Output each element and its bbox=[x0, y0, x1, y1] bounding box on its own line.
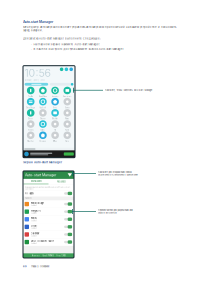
staticText: · bbox=[31, 47, 32, 51]
staticText: Enabled bbox=[30, 220, 36, 222]
staticText: Переключатели для разрешения или запрета… bbox=[97, 209, 132, 214]
staticText: Radio bbox=[65, 129, 69, 131]
staticText: PRELOADED bbox=[56, 180, 65, 183]
staticText: Quick Clean bbox=[39, 95, 47, 97]
button[interactable]: DOWNLOADED bbox=[23, 179, 48, 184]
button[interactable]: PhotoCollage bbox=[23, 200, 74, 208]
staticText: 10:56 bbox=[25, 66, 51, 79]
button[interactable]: Gmail bbox=[23, 223, 74, 231]
staticText: Enabled bbox=[30, 204, 36, 206]
staticText: Auto-start bbox=[63, 95, 72, 97]
staticText: Для запуска Auto-start Manager выполните… bbox=[23, 37, 101, 40]
staticText: File bbox=[54, 129, 56, 131]
button[interactable]: Photos bbox=[23, 215, 74, 223]
staticText: Cleaner bbox=[40, 118, 46, 120]
staticText: Нажмите, чтобы запустить Auto-start Mana… bbox=[104, 89, 152, 91]
staticText: Enabled bbox=[30, 235, 36, 237]
staticText: Mi Pay bbox=[53, 140, 57, 142]
staticText: Нажмите для отображения списка загруженн… bbox=[97, 171, 137, 176]
staticText: · bbox=[31, 43, 32, 46]
staticText: В панели быстрого доступа нажмите значок… bbox=[33, 47, 124, 51]
staticText: Calendar bbox=[30, 232, 39, 235]
staticText: MangaLife bbox=[30, 209, 40, 212]
staticText: Глава 3. Основное bbox=[31, 265, 49, 268]
button[interactable]: All apps bbox=[23, 190, 74, 196]
button[interactable]: Calendar bbox=[23, 231, 74, 238]
staticText: Enabled bbox=[30, 242, 36, 244]
staticText: ENABLED bbox=[25, 197, 32, 199]
staticText: Weather bbox=[27, 140, 34, 142]
staticText: Auto-start Manager bbox=[25, 173, 56, 177]
staticText: All apps bbox=[25, 192, 34, 195]
staticText: Blocklist bbox=[52, 118, 58, 120]
staticText: Boost bbox=[28, 118, 33, 120]
staticText: Gmail bbox=[30, 224, 37, 227]
staticText: DOWNLOADED bbox=[30, 180, 41, 182]
staticText: Data Usage bbox=[26, 107, 35, 108]
staticText: Sync bbox=[53, 107, 57, 108]
staticText: App Lock bbox=[39, 107, 46, 108]
staticText: Store bbox=[65, 140, 69, 142]
button[interactable]: MIUI Cloud PC Suite bbox=[23, 238, 74, 246]
staticText: Экран Auto-start Manager bbox=[23, 161, 62, 164]
button[interactable]: MangaLife bbox=[23, 208, 74, 215]
staticText: Memory: Used 700MB Free 1.3GB bbox=[31, 254, 65, 257]
staticText: Photos bbox=[30, 217, 36, 220]
staticText: PhotoCollage bbox=[30, 202, 43, 204]
staticText: Battery bbox=[40, 129, 45, 131]
staticText: Менеджер автозапуска позволяет управлять… bbox=[23, 25, 176, 32]
staticText: На главном экране нажмите Auto-start Man… bbox=[33, 43, 100, 46]
staticText: Notes bbox=[65, 118, 69, 120]
staticText: Enabled bbox=[30, 227, 36, 229]
staticText: Monday, April 9, 2018 bbox=[25, 79, 45, 81]
staticText: MIUI Cloud PC Suite bbox=[30, 240, 53, 242]
staticText: Some apps may not work properly if you t… bbox=[25, 186, 71, 190]
staticText: 69 bbox=[23, 265, 27, 268]
staticText: Enabled bbox=[30, 212, 36, 214]
button[interactable]: Auto-start Manager bbox=[23, 171, 74, 179]
staticText: Games bbox=[65, 107, 70, 108]
staticText: Security bbox=[52, 95, 59, 97]
staticText: Toolkit bbox=[28, 95, 33, 97]
staticText: Auto-start Manager bbox=[23, 20, 53, 24]
staticText: Themes bbox=[28, 129, 34, 131]
button[interactable]: PRELOADED bbox=[48, 179, 73, 184]
staticText: Browser bbox=[39, 140, 46, 142]
